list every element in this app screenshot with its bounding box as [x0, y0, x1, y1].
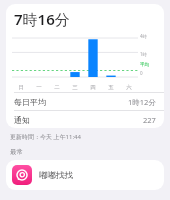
button[interactable]: 每日平均 — [6, 93, 164, 110]
staticText: 三 — [72, 84, 78, 91]
staticText: 7時16分 — [14, 9, 70, 29]
staticText: 六 — [126, 84, 132, 91]
button[interactable]: 4時 — [6, 30, 164, 92]
staticText: 嘟嘟找找 — [39, 170, 73, 181]
staticText: 二 — [54, 84, 60, 91]
staticText: 日 — [18, 84, 24, 91]
button[interactable]: 嘟嘟找找 App — [6, 160, 164, 190]
staticText: 四 — [90, 84, 96, 91]
button[interactable]: 通知 — [6, 111, 164, 128]
staticText: 0 — [140, 70, 143, 76]
staticText: 五 — [108, 84, 114, 91]
staticText: 通知 — [14, 115, 30, 125]
staticText: 227 — [143, 115, 156, 125]
staticText: 每日平均 — [14, 97, 46, 107]
staticText: 一 — [36, 84, 42, 91]
staticText: 4時 — [140, 33, 148, 39]
staticText: 平均 — [140, 62, 149, 68]
staticText: 更新時間：今天 上午11:44 — [10, 133, 81, 141]
staticText: 最常 — [10, 148, 23, 156]
staticText: 1時 — [140, 51, 148, 57]
staticText: 1時12分 — [128, 97, 156, 107]
other: 嘟嘟找找 App — [12, 165, 32, 185]
